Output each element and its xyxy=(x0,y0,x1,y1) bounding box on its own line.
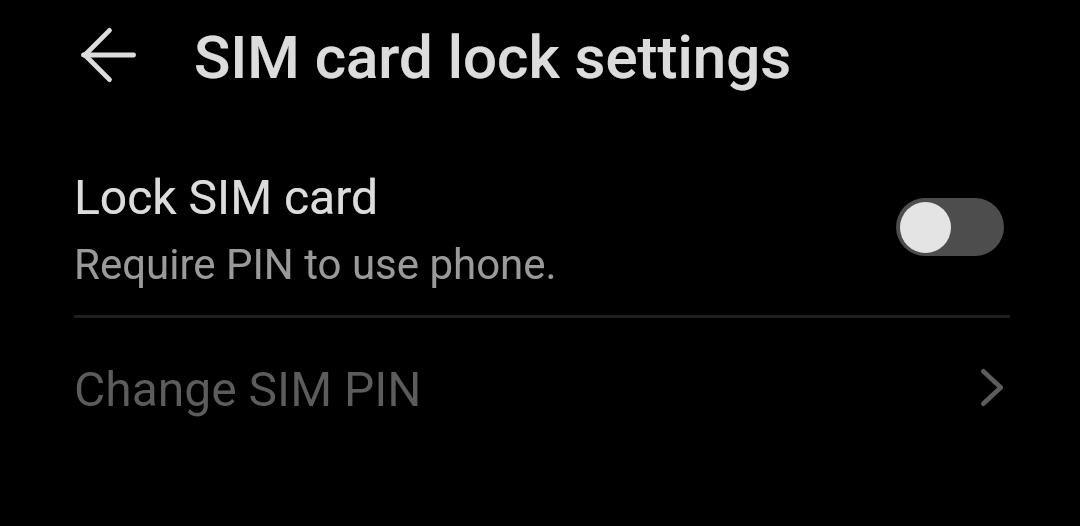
staticText: Change SIM PIN xyxy=(74,361,422,417)
button[interactable]: Navigate up xyxy=(66,12,151,97)
button[interactable]: Change SIM PIN xyxy=(0,320,1080,454)
staticText: SIM card lock settings xyxy=(194,22,792,92)
button[interactable]: Lock SIM card xyxy=(0,150,1080,305)
button[interactable]: Lock SIM card xyxy=(896,198,1004,256)
staticText: Lock SIM card xyxy=(74,169,379,225)
staticText: Require PIN to use phone. xyxy=(74,240,557,289)
